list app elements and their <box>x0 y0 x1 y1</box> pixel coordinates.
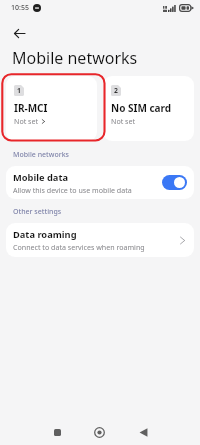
staticText: 2 <box>114 86 118 95</box>
button[interactable]: Back <box>7 21 31 45</box>
staticText: Other settings <box>13 207 62 217</box>
button[interactable]: Back <box>132 421 154 443</box>
button[interactable]: 2 <box>103 76 194 141</box>
button[interactable]: 1 <box>6 76 97 141</box>
button[interactable]: Home <box>88 421 110 443</box>
staticText: IR-MCI <box>14 101 48 115</box>
staticText: Not set <box>111 116 136 126</box>
staticText: 1 <box>17 86 21 95</box>
staticText: Mobile networks <box>13 150 69 160</box>
staticText: Data roaming <box>13 228 77 241</box>
staticText: No SIM card <box>111 101 172 115</box>
button[interactable]: Recents <box>46 421 68 443</box>
staticText: Not set <box>14 116 39 126</box>
staticText: Mobile networks <box>12 47 138 69</box>
button[interactable]: Data roaming <box>6 223 194 257</box>
staticText: Mobile data <box>13 171 69 184</box>
staticText: 10:55 <box>11 3 29 13</box>
staticText: Connect to data services when roaming <box>13 242 145 252</box>
button[interactable]: Mobile data <box>6 166 194 199</box>
staticText: Allow this device to use mobile data <box>13 185 132 195</box>
